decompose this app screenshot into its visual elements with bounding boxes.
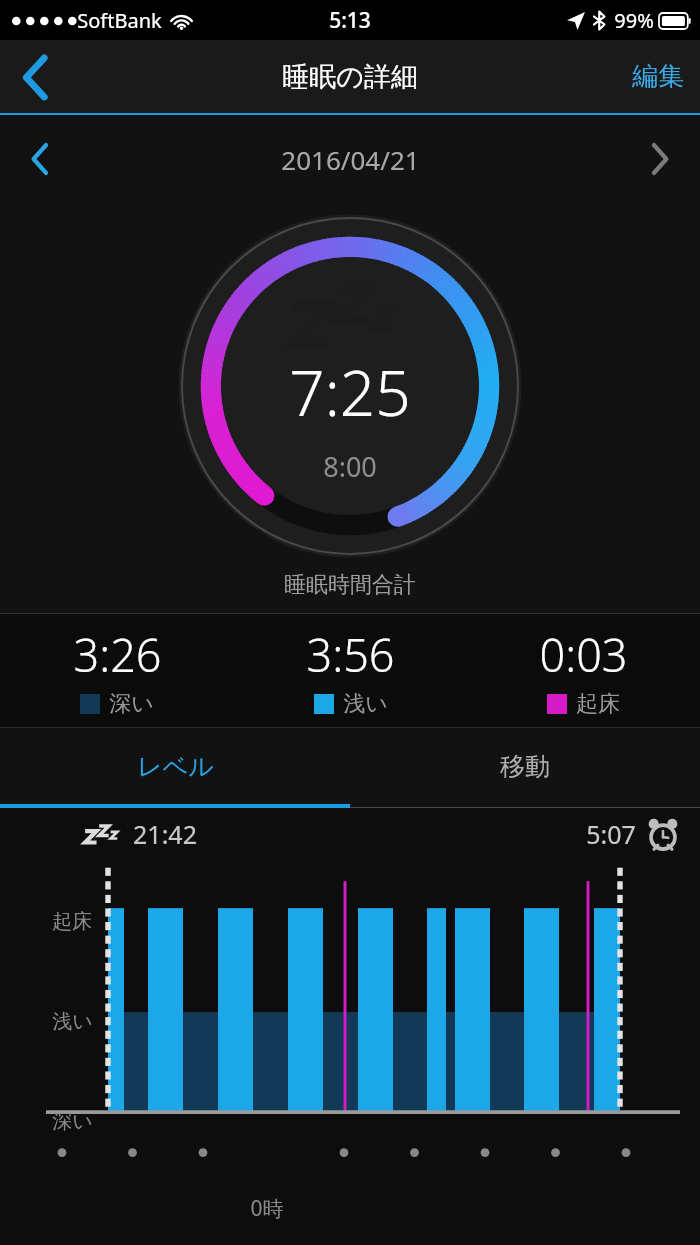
staticText: 起床 [52, 909, 92, 934]
button[interactable]: Next day [632, 131, 688, 187]
staticText: 99% [614, 7, 654, 34]
staticText: 睡眠の詳細 [282, 60, 418, 94]
button[interactable]: 3:56 [234, 624, 467, 718]
button[interactable]: 編集 [632, 60, 684, 93]
button[interactable]: 3:26 [0, 624, 234, 718]
button[interactable]: 0:03 [467, 624, 700, 718]
staticText: 3:56 [306, 624, 395, 685]
staticText: 深い [52, 1109, 93, 1134]
staticText: 起床 [576, 690, 620, 718]
staticText: 深い [109, 690, 154, 718]
staticText: 浅い [343, 690, 388, 718]
staticText: 2016/04/21 [281, 142, 420, 177]
staticText: レベル [137, 751, 214, 782]
staticText: 7:25 [289, 350, 411, 434]
staticText: 8:00 [323, 448, 377, 485]
staticText: 移動 [500, 751, 550, 782]
other: Alarm [648, 818, 678, 851]
button[interactable]: 移動 [350, 728, 700, 804]
button[interactable]: Back [6, 48, 64, 106]
staticText: 睡眠時間合計 [284, 571, 416, 599]
staticText: 5:07 [586, 817, 636, 851]
staticText: 0:03 [539, 624, 628, 685]
staticText: 浅い [52, 1009, 93, 1034]
button[interactable]: Previous day [12, 131, 68, 187]
staticText: SoftBank [77, 7, 162, 34]
staticText: 3:26 [73, 624, 162, 685]
button[interactable]: レベル [0, 728, 350, 804]
staticText: 21:42 [133, 817, 197, 851]
staticText: 5:13 [329, 6, 371, 35]
staticText: 0時 [250, 1194, 284, 1223]
staticText: 編集 [632, 60, 684, 93]
